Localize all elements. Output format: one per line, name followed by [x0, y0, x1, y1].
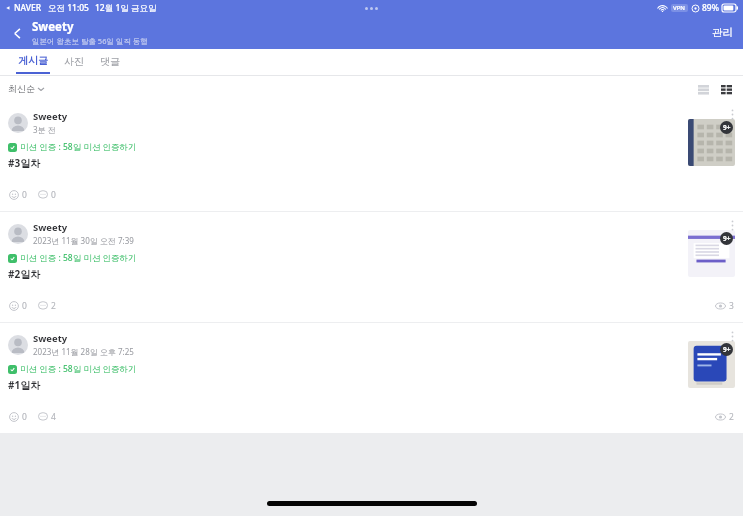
button[interactable]: 최신순: [8, 83, 44, 94]
button[interactable]: List view: [693, 79, 713, 99]
staticText: 3분 전: [33, 124, 56, 135]
button[interactable]: Comments: [38, 300, 56, 312]
button[interactable]: Sweety: [0, 212, 743, 322]
button[interactable]: 사진: [56, 49, 92, 75]
button[interactable]: Like: [9, 189, 27, 201]
staticText: 게시글: [18, 54, 48, 67]
staticText: Sweety: [33, 110, 68, 123]
staticText: 관리: [712, 26, 733, 39]
staticText: 0: [22, 189, 27, 201]
staticText: #2일차: [8, 267, 41, 281]
button[interactable]: 게시글: [10, 49, 56, 75]
staticText: 2: [51, 300, 56, 312]
staticText: VPN: [673, 4, 686, 12]
staticText: 0: [22, 300, 27, 312]
staticText: 일본어 왕초보 탈출 56일 일직 동행: [32, 36, 148, 46]
staticText: 3: [729, 300, 734, 312]
staticText: 4: [51, 411, 56, 423]
button[interactable]: 관리: [712, 26, 733, 39]
button[interactable]: Grid view: [716, 79, 736, 99]
staticText: 2: [729, 411, 734, 423]
staticText: 2023년 11월 30일 오전 7:39: [33, 235, 134, 246]
staticText: NAVER: [14, 2, 42, 14]
staticText: 12월 1일 금요일: [95, 2, 157, 14]
staticText: 미션 인증 : 58일 미션 인증하기: [20, 363, 137, 375]
staticText: 미션 인증 : 58일 미션 인증하기: [20, 252, 137, 264]
staticText: 사진: [64, 55, 84, 68]
button[interactable]: Sweety: [0, 101, 743, 211]
button[interactable]: 9+: [688, 230, 735, 277]
button[interactable]: Like: [9, 411, 27, 423]
staticText: Sweety: [33, 332, 68, 345]
staticText: 2023년 11월 28일 오후 7:25: [33, 346, 134, 357]
button[interactable]: Back: [4, 20, 30, 46]
staticText: 댓글: [100, 55, 120, 68]
staticText: 9+: [723, 234, 731, 243]
button[interactable]: 댓글: [92, 49, 128, 75]
button[interactable]: Like: [9, 300, 27, 312]
button[interactable]: Comments: [38, 189, 56, 201]
staticText: Sweety: [32, 19, 74, 35]
staticText: 오전 11:05: [48, 2, 89, 14]
button[interactable]: Sweety: [32, 19, 148, 46]
staticText: Sweety: [33, 221, 68, 234]
button[interactable]: More options: [723, 327, 741, 345]
staticText: 89%: [702, 2, 719, 14]
staticText: #3일차: [8, 156, 41, 170]
staticText: 미션 인증 : 58일 미션 인증하기: [20, 141, 137, 153]
button[interactable]: More options: [723, 216, 741, 234]
staticText: 9+: [723, 345, 731, 354]
staticText: 9+: [723, 123, 731, 132]
button[interactable]: Sweety: [0, 323, 743, 433]
button[interactable]: Comments: [38, 411, 56, 423]
button[interactable]: More options: [723, 105, 741, 123]
button[interactable]: 9+: [688, 119, 735, 166]
staticText: 최신순: [8, 83, 35, 94]
button[interactable]: 9+: [688, 341, 735, 388]
staticText: 0: [51, 189, 56, 201]
staticText: #1일차: [8, 378, 41, 392]
staticText: 0: [22, 411, 27, 423]
